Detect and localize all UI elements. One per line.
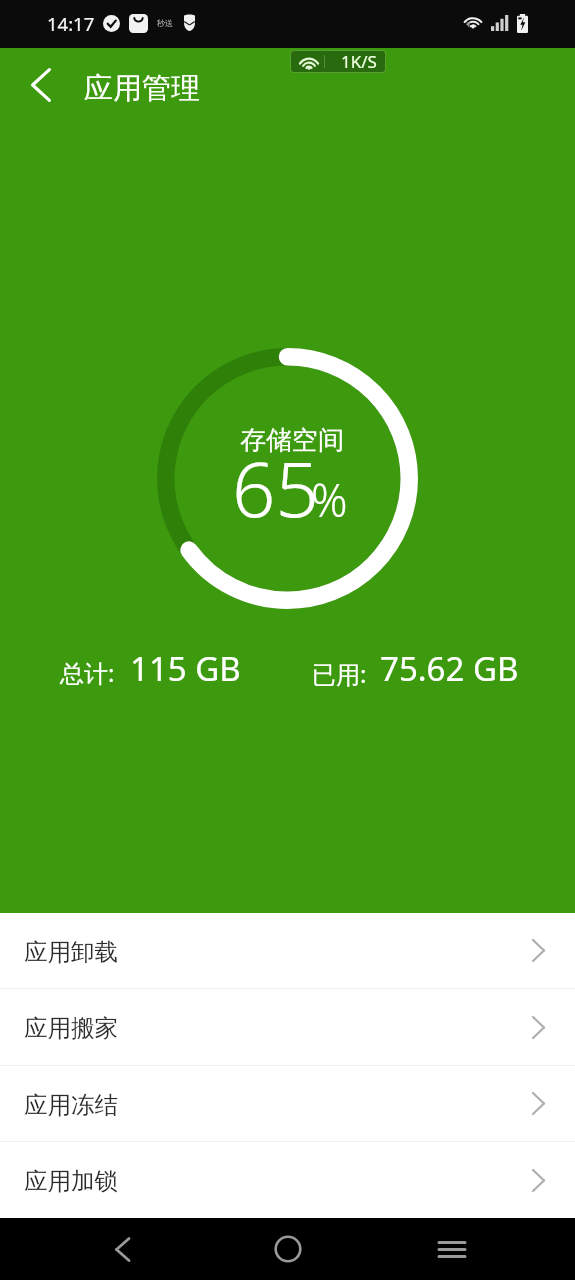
button[interactable]: 应用冻结 <box>0 1066 575 1141</box>
staticText: 应用冻结 <box>24 1090 118 1120</box>
staticText: % <box>311 469 348 530</box>
button[interactable]: Home <box>258 1218 318 1280</box>
staticText: 14:17 <box>47 11 95 36</box>
staticText: 1K/S <box>341 51 377 71</box>
staticText: 应用加锁 <box>24 1166 118 1196</box>
button[interactable]: Back <box>92 1218 152 1280</box>
button[interactable]: Recent apps <box>422 1218 482 1280</box>
staticText: 75.62 GB <box>380 646 519 691</box>
button[interactable]: Back <box>13 57 69 113</box>
staticText: 秒送 <box>157 18 173 28</box>
staticText: 已用: <box>312 657 367 690</box>
staticText: 应用管理 <box>84 70 200 107</box>
button[interactable]: 应用卸载 <box>0 913 575 988</box>
staticText: 存储空间 <box>240 424 344 457</box>
staticText: 总计: <box>60 656 115 689</box>
staticText: 115 GB <box>130 646 241 691</box>
staticText: 65 <box>232 436 319 540</box>
staticText: 应用搬家 <box>24 1013 118 1043</box>
staticText: 应用卸载 <box>24 937 118 967</box>
button[interactable]: 应用加锁 <box>0 1142 575 1218</box>
button[interactable]: Network speed <box>291 51 385 72</box>
button[interactable]: 应用搬家 <box>0 989 575 1065</box>
